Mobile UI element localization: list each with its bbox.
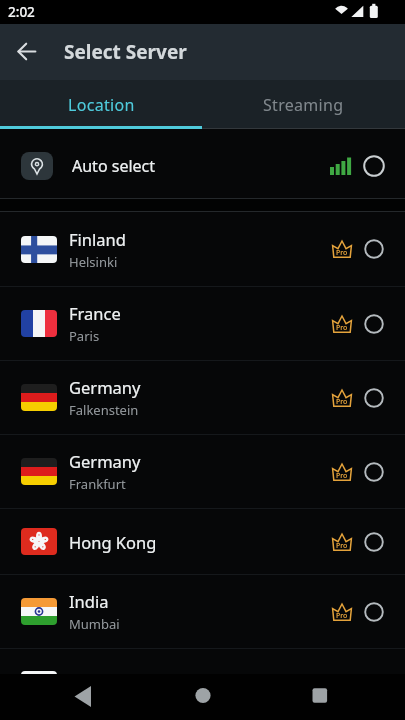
staticText: Select Server (64, 39, 187, 65)
staticText: Location (68, 94, 135, 116)
staticText: Pro (336, 471, 348, 481)
button[interactable]: Germany (0, 435, 405, 508)
button[interactable]: Auto select (0, 134, 405, 198)
button[interactable] (0, 24, 56, 80)
staticText: Germany (69, 376, 141, 398)
button[interactable]: France (0, 287, 405, 360)
staticText: Finland (69, 228, 126, 250)
staticText: Mumbai (69, 615, 120, 633)
staticText: Pro (336, 248, 348, 258)
button[interactable]: Streaming (202, 80, 405, 129)
staticText: 2:02 (8, 3, 35, 21)
staticText: France (69, 302, 121, 324)
staticText: Pro (336, 541, 348, 551)
staticText: Paris (69, 327, 100, 345)
button[interactable]: Hong Kong (0, 509, 405, 574)
staticText: Pro (336, 323, 348, 333)
button[interactable]: Germany (0, 361, 405, 434)
staticText: Streaming (263, 94, 344, 116)
staticText: Pro (336, 611, 348, 621)
staticText: Frankfurt (69, 475, 126, 493)
staticText: Germany (69, 450, 141, 472)
button[interactable] (135, 674, 270, 720)
staticText: Helsinki (69, 253, 118, 271)
button[interactable] (270, 674, 405, 720)
button[interactable]: Finland (0, 212, 405, 286)
button[interactable]: Location (0, 80, 202, 129)
staticText: Auto select (72, 155, 156, 177)
staticText: India (69, 590, 109, 612)
button[interactable]: India (0, 575, 405, 648)
button[interactable] (0, 674, 135, 720)
staticText: Falkenstein (69, 401, 139, 419)
staticText: Pro (336, 397, 348, 407)
staticText: Hong Kong (69, 531, 157, 553)
button[interactable] (0, 649, 405, 720)
